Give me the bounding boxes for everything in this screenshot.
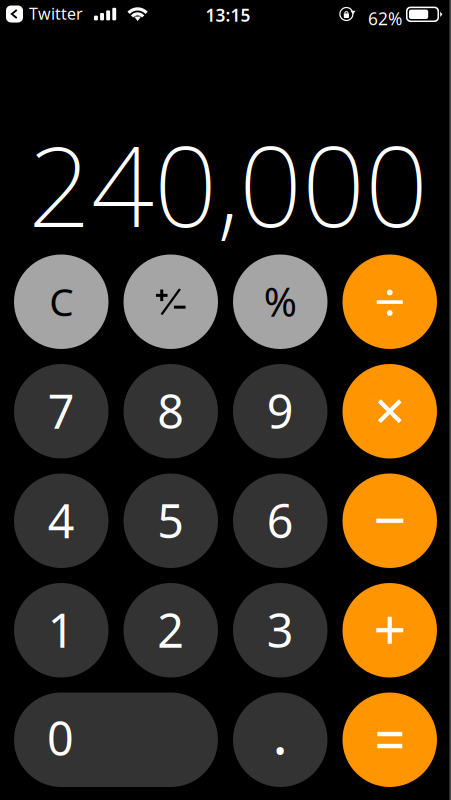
staticText: 0 (47, 707, 74, 769)
button[interactable]: 2 (123, 583, 218, 677)
button[interactable]: Multiply (342, 364, 437, 458)
button[interactable]: Minus (342, 473, 437, 568)
button[interactable]: 4 (14, 473, 108, 568)
button[interactable]: Back to Twitter (6, 2, 83, 26)
staticText: 240,000 (28, 110, 428, 257)
button[interactable]: 8 (123, 364, 218, 458)
button[interactable]: 5 (123, 473, 218, 568)
button[interactable]: 3 (233, 583, 327, 677)
staticText: 9 (267, 380, 294, 442)
staticText: 6 (267, 489, 294, 551)
staticText: 62% (368, 7, 402, 30)
button[interactable]: Plus Minus (123, 254, 218, 349)
staticText: 13:15 (205, 3, 250, 26)
button[interactable]: % (233, 254, 327, 349)
staticText: 3 (267, 599, 294, 661)
button[interactable]: 9 (233, 364, 327, 458)
staticText: Twitter (29, 3, 83, 24)
staticText: C (49, 276, 73, 327)
button[interactable]: Equals (342, 692, 437, 787)
button[interactable]: C (14, 254, 108, 349)
button[interactable]: Plus (342, 583, 437, 677)
staticText: 4 (48, 489, 75, 551)
staticText: 1 (48, 599, 75, 661)
button[interactable]: 6 (233, 473, 327, 568)
button[interactable]: 0 (14, 692, 218, 787)
staticText: 2 (157, 599, 184, 661)
staticText: 7 (48, 380, 75, 442)
button[interactable]: . (233, 692, 327, 787)
button[interactable]: Divide (342, 254, 437, 349)
staticText: . (272, 693, 288, 771)
button[interactable]: 7 (14, 364, 108, 458)
staticText: 8 (157, 380, 184, 442)
staticText: 5 (157, 489, 184, 551)
staticText: % (264, 275, 297, 328)
button[interactable]: 1 (14, 583, 108, 677)
